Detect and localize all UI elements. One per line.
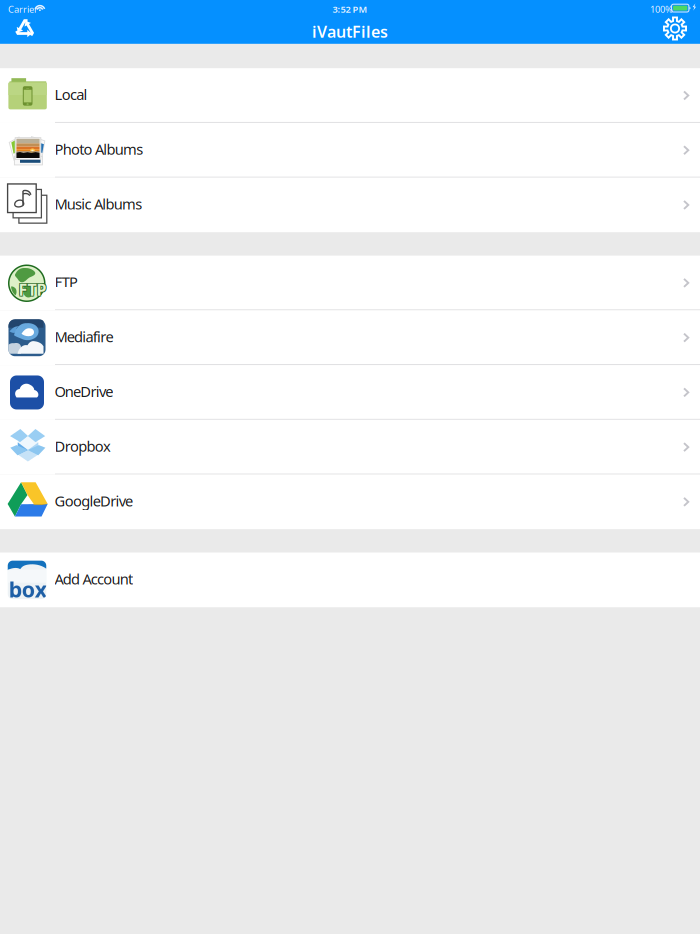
staticText: box [9,575,47,603]
staticText: Dropbox [55,436,111,456]
staticText: FTP [18,280,46,301]
staticText: Mediafire [55,327,114,346]
staticText: GoogleDrive [55,491,133,510]
staticText: Music Albums [55,194,142,214]
staticText: FTP [18,279,46,300]
button[interactable]: Photo Albums [0,123,700,178]
button[interactable]: Dropbox [0,420,700,474]
button[interactable]: Recycle bin [10,13,40,43]
button[interactable]: box [0,552,700,607]
staticText: iVautFiles [312,21,388,42]
button[interactable]: Music Albums [0,178,700,232]
staticText: Photo Albums [55,139,143,159]
button[interactable]: OneDrive [0,365,700,420]
button[interactable]: FTP [0,256,700,310]
staticText: Add Account [55,569,133,588]
staticText: 3:52 PM [332,3,367,15]
staticText: Carrier [8,3,38,15]
button[interactable]: GoogleDrive [0,475,700,529]
staticText: Local [55,85,88,104]
staticText: FTP [55,272,78,292]
button[interactable]: Settings [660,13,690,43]
staticText: FTP [19,278,47,299]
staticText: OneDrive [55,381,113,401]
staticText: 100% [650,3,673,15]
button[interactable]: Mediafire [0,310,700,365]
button[interactable]: Local [0,68,700,123]
staticText: FTP [18,278,46,299]
staticText: FTP [19,280,47,301]
